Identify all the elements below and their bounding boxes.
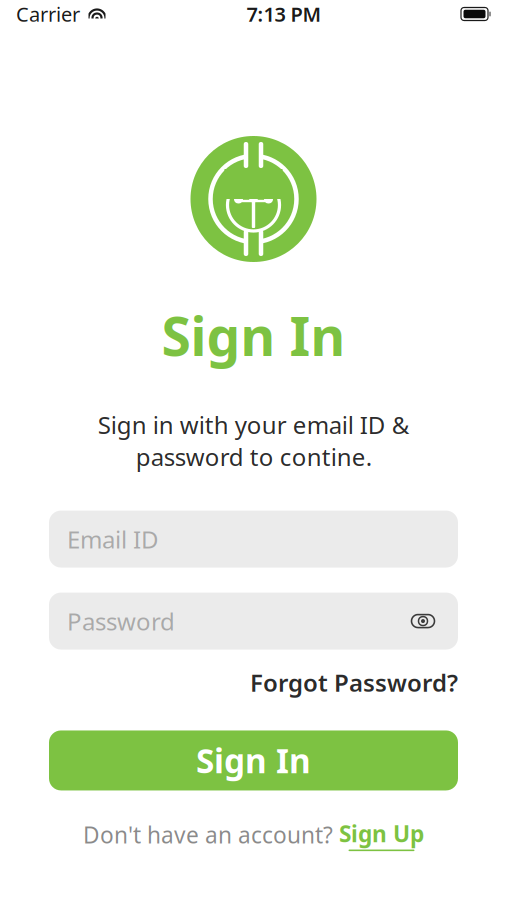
button[interactable]: Forgot Password? [250, 667, 458, 698]
button[interactable]: Password [49, 593, 458, 650]
staticText: Sign Up [339, 818, 424, 848]
staticText: Don't have an account? [83, 820, 333, 850]
button[interactable]: Sign Up [339, 818, 424, 851]
staticText: Password [67, 605, 175, 637]
staticText: 7:13 PM [246, 1, 321, 27]
button[interactable]: Show password [406, 607, 440, 635]
button[interactable]: Email ID [49, 511, 458, 568]
staticText: Carrier [16, 1, 80, 27]
button[interactable]: Sign In [49, 730, 458, 790]
staticText: Email ID [67, 523, 159, 555]
staticText: Forgot Password? [250, 667, 458, 698]
staticText: Sign in with your email ID & password to… [97, 409, 409, 472]
staticText: Sign In [161, 300, 345, 371]
staticText: Sign In [196, 738, 311, 783]
